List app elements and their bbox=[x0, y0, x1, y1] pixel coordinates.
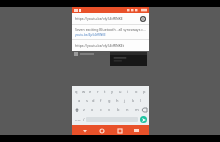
button[interactable]: Recents bbox=[132, 126, 141, 135]
button[interactable]: Send bbox=[140, 116, 147, 123]
staticText: ?123 bbox=[75, 118, 81, 121]
staticText: w bbox=[82, 89, 86, 94]
staticText: k bbox=[132, 98, 135, 103]
button[interactable]: Back bbox=[115, 126, 124, 135]
button[interactable]: r bbox=[94, 87, 101, 96]
button[interactable]: https://youtu.be/vly54tfRNKEt bbox=[72, 40, 149, 51]
button[interactable]: c bbox=[96, 105, 105, 114]
staticText: n bbox=[126, 107, 129, 112]
staticText: z bbox=[83, 107, 85, 112]
button[interactable]: y bbox=[108, 87, 116, 96]
staticText: y bbox=[111, 89, 114, 94]
staticText: https://youtu.be/vly54tfRNKE bbox=[75, 16, 140, 21]
button[interactable]: Attachment chip bbox=[74, 51, 98, 57]
staticText: t bbox=[104, 89, 106, 94]
button[interactable]: x bbox=[88, 105, 96, 114]
button[interactable]: g bbox=[105, 96, 113, 105]
button[interactable]: v bbox=[105, 105, 114, 114]
staticText: Seven exciting Bluetooth - all syncsways… bbox=[75, 27, 146, 32]
staticText: s bbox=[86, 98, 88, 103]
staticText: p bbox=[143, 89, 146, 94]
staticText: / bbox=[83, 117, 85, 122]
button[interactable]: q bbox=[73, 87, 80, 96]
staticText: h bbox=[116, 98, 119, 103]
staticText: g bbox=[108, 98, 111, 103]
button[interactable]: e bbox=[87, 87, 94, 96]
staticText: x bbox=[91, 107, 94, 112]
staticText: l bbox=[140, 98, 142, 103]
staticText: youtu.be/4jz54tfRNKE bbox=[75, 33, 106, 37]
staticText: b bbox=[117, 107, 120, 112]
button[interactable]: m bbox=[132, 105, 141, 114]
button[interactable]: l bbox=[137, 96, 145, 105]
button[interactable]: https://youtu.be/vly54tfRNKE bbox=[72, 13, 149, 24]
button[interactable]: Shift bbox=[73, 105, 80, 114]
button[interactable]: h bbox=[113, 96, 121, 105]
staticText: j bbox=[124, 98, 126, 103]
staticText: i bbox=[127, 89, 129, 94]
button[interactable]: Backspace bbox=[141, 105, 148, 114]
button[interactable]: p bbox=[140, 87, 148, 96]
staticText: c bbox=[100, 107, 102, 112]
button[interactable]: f bbox=[97, 96, 105, 105]
staticText: q bbox=[75, 89, 78, 94]
button[interactable]: Hide keyboard bbox=[80, 126, 89, 135]
button[interactable]: a bbox=[76, 96, 83, 105]
staticText: https://youtu.be/vly54tfRNKEt bbox=[75, 43, 125, 48]
button[interactable]: i bbox=[124, 87, 132, 96]
button[interactable]: s bbox=[83, 96, 90, 105]
button[interactable]: Settings bbox=[140, 16, 146, 22]
button[interactable]: u bbox=[116, 87, 124, 96]
button[interactable]: j bbox=[121, 96, 129, 105]
button[interactable]: d bbox=[90, 96, 97, 105]
button[interactable]: b bbox=[114, 105, 123, 114]
button[interactable]: t bbox=[101, 87, 108, 96]
staticText: u bbox=[119, 89, 122, 94]
staticText: d bbox=[92, 98, 95, 103]
button[interactable]: / bbox=[81, 114, 86, 124]
staticText: r bbox=[97, 89, 99, 94]
button[interactable]: z bbox=[80, 105, 88, 114]
button[interactable]: w bbox=[80, 87, 87, 96]
staticText: m bbox=[135, 107, 139, 112]
button[interactable]: Home bbox=[97, 126, 106, 135]
staticText: f bbox=[100, 98, 102, 103]
button[interactable]: Video preview bbox=[110, 52, 147, 66]
button[interactable]: n bbox=[123, 105, 132, 114]
button[interactable]: k bbox=[129, 96, 137, 105]
button[interactable]: Seven exciting Bluetooth - all syncsways… bbox=[72, 25, 149, 39]
button[interactable]: o bbox=[132, 87, 140, 96]
staticText: v bbox=[108, 107, 111, 112]
button[interactable]: ?123 bbox=[74, 114, 81, 124]
staticText: a bbox=[78, 98, 81, 103]
staticText: e bbox=[89, 89, 92, 94]
staticText: o bbox=[135, 89, 138, 94]
